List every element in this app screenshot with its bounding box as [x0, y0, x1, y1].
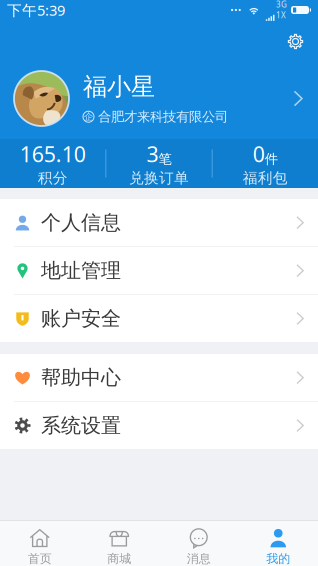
- button[interactable]: 福小星: [0, 58, 318, 139]
- staticText: 兑换订单: [129, 169, 189, 187]
- button[interactable]: 地址管理: [0, 247, 318, 295]
- staticText: 福利包: [243, 169, 288, 187]
- button[interactable]: 设置: [278, 19, 313, 59]
- button[interactable]: 消息: [159, 520, 238, 566]
- staticText: 消息: [187, 551, 211, 566]
- staticText: 积分: [38, 169, 68, 187]
- staticText: 合肥才来科技有限公司: [98, 109, 228, 125]
- staticText: 企: [84, 111, 93, 122]
- button[interactable]: 我的: [238, 520, 318, 566]
- staticText: 商城: [107, 551, 131, 566]
- staticText: 地址管理: [41, 258, 121, 283]
- button[interactable]: 账户安全: [0, 295, 318, 342]
- staticText: 首页: [28, 551, 52, 566]
- button[interactable]: 商城: [79, 520, 159, 566]
- staticText: 3: [146, 140, 158, 168]
- button[interactable]: 系统设置: [0, 402, 318, 449]
- staticText: 1X: [276, 10, 286, 20]
- staticText: 系统设置: [41, 413, 121, 438]
- staticText: 个人信息: [41, 210, 121, 235]
- staticText: 0: [253, 140, 265, 168]
- staticText: 件: [265, 151, 278, 167]
- button[interactable]: 帮助中心: [0, 354, 318, 402]
- button[interactable]: 个人信息: [0, 199, 318, 247]
- button[interactable]: 首页: [0, 520, 79, 566]
- staticText: 福小星: [83, 72, 155, 102]
- staticText: 165.10: [20, 140, 86, 168]
- staticText: 笔: [158, 151, 171, 167]
- staticText: 帮助中心: [41, 365, 121, 390]
- staticText: 账户安全: [41, 306, 121, 331]
- staticText: 3G: [276, 0, 287, 10]
- staticText: 下午5:39: [7, 0, 65, 20]
- staticText: 我的: [266, 551, 290, 566]
